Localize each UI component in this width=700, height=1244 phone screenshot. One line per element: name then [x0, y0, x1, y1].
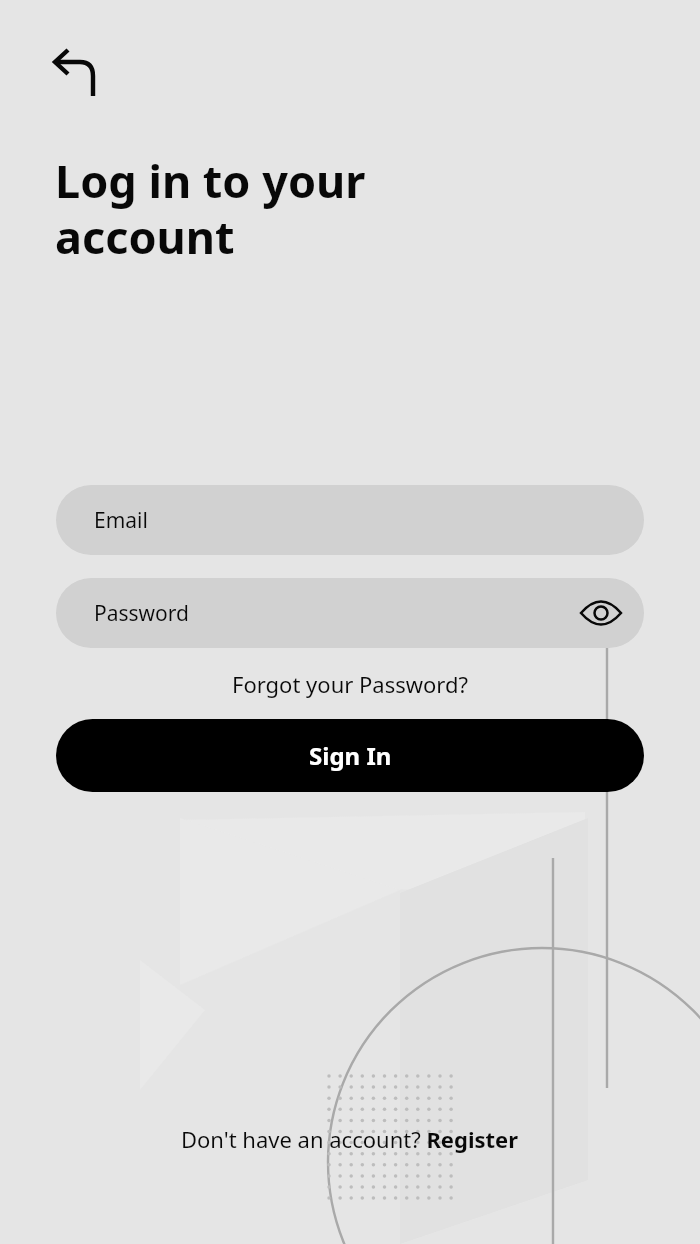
button[interactable]: Forgot your Password?: [224, 665, 477, 703]
staticText: Log in to your account: [55, 150, 366, 267]
staticText: Email: [94, 506, 148, 535]
button[interactable]: Email: [56, 485, 644, 555]
button[interactable]: Back: [38, 36, 104, 102]
button[interactable]: Show password: [577, 589, 625, 637]
staticText: Forgot your Password?: [232, 669, 469, 699]
button[interactable]: Password: [56, 578, 644, 648]
staticText: Don't have an account? Register: [181, 1124, 519, 1154]
staticText: Sign In: [309, 739, 392, 772]
staticText: Password: [94, 599, 189, 628]
button[interactable]: Sign In: [56, 719, 644, 792]
button[interactable]: Don't have an account? Register: [173, 1120, 527, 1158]
